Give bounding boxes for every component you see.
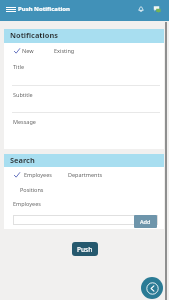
staticText: Departments [68,171,103,178]
button[interactable]: Messages [150,2,163,15]
staticText: Employees [24,171,52,178]
staticText: Add [140,218,151,225]
button[interactable]: Menu [2,2,19,19]
staticText: Notifications [10,30,58,40]
staticText: Positions [20,186,44,193]
staticText: Search [10,155,35,165]
button[interactable]: Back [141,277,163,299]
button[interactable]: Push [72,242,98,256]
staticText: Employees [13,200,41,207]
staticText: Push Notification [18,5,70,13]
staticText: Push [77,245,93,254]
button[interactable]: Notifications [134,2,147,15]
staticText: New [22,47,34,54]
button[interactable]: Add [134,215,157,228]
staticText: Message [13,118,36,125]
staticText: Title [13,63,24,70]
staticText: Existing [54,47,75,54]
staticText: Subtitle [13,91,33,98]
